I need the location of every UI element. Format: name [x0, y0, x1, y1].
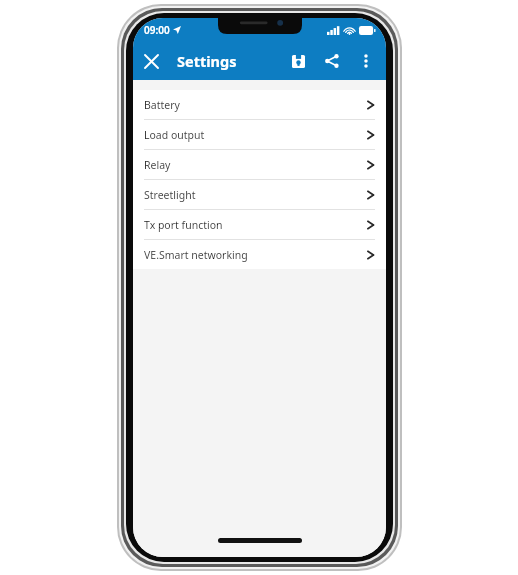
button[interactable]: Share [315, 44, 349, 78]
staticText: 09:00 [144, 23, 170, 37]
button[interactable]: Close [133, 43, 169, 79]
button[interactable]: Load output [133, 120, 386, 149]
staticText: VE.Smart networking [144, 248, 248, 262]
staticText: Battery [144, 98, 180, 112]
staticText: Load output [144, 128, 205, 142]
staticText: Relay [144, 158, 171, 172]
staticText: Settings [177, 51, 237, 71]
button[interactable]: Tx port function [133, 210, 386, 239]
button[interactable]: Relay [133, 150, 386, 179]
button[interactable]: Save [281, 44, 315, 78]
button[interactable]: More options [349, 44, 383, 78]
staticText: Streetlight [144, 188, 196, 202]
button[interactable]: VE.Smart networking [133, 240, 386, 269]
button[interactable]: Streetlight [133, 180, 386, 209]
staticText: Tx port function [144, 218, 223, 232]
button[interactable]: Battery [133, 90, 386, 119]
